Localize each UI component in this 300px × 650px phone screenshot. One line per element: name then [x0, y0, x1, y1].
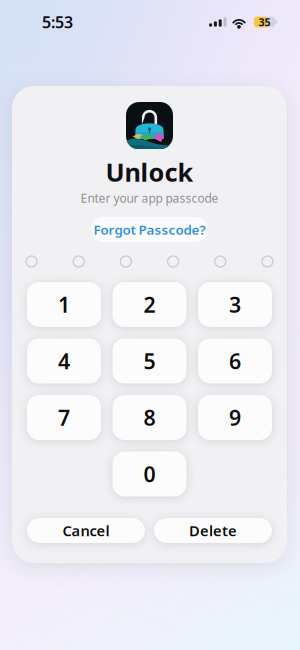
button[interactable]: 4: [27, 338, 101, 383]
button[interactable]: 6: [198, 338, 272, 383]
staticText: Unlock: [105, 155, 193, 189]
staticText: Delete: [189, 521, 237, 540]
staticText: 35: [258, 15, 270, 29]
button[interactable]: Forgot Passcode?: [91, 217, 208, 242]
staticText: 1: [58, 290, 70, 319]
button[interactable]: Delete: [154, 518, 272, 543]
staticText: 5: [143, 347, 155, 375]
staticText: 6: [229, 347, 241, 375]
staticText: Enter your app passcode: [80, 190, 218, 206]
button[interactable]: 1: [27, 282, 101, 327]
button[interactable]: 2: [112, 282, 186, 327]
staticText: 5:53: [42, 11, 73, 33]
button[interactable]: 0: [112, 451, 186, 496]
staticText: 2: [143, 290, 155, 319]
staticText: Cancel: [62, 521, 109, 540]
staticText: 3: [229, 290, 241, 319]
button[interactable]: 3: [198, 282, 272, 327]
button[interactable]: Cancel: [27, 518, 145, 543]
button[interactable]: 5: [112, 338, 186, 383]
button[interactable]: 8: [112, 395, 186, 440]
staticText: 9: [229, 403, 241, 432]
staticText: 0: [143, 460, 155, 488]
button[interactable]: 9: [198, 395, 272, 440]
staticText: 4: [58, 347, 70, 375]
staticText: Forgot Passcode?: [93, 221, 205, 238]
button[interactable]: 7: [27, 395, 101, 440]
staticText: 8: [143, 403, 155, 432]
staticText: 7: [58, 403, 70, 432]
